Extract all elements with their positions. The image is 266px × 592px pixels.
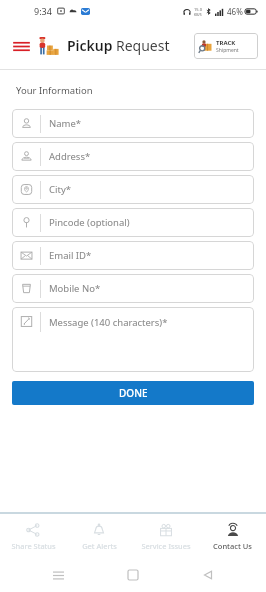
button[interactable]: Home (116, 558, 150, 592)
staticText: Message (140 characters)* (49, 316, 168, 329)
staticText: Address* (49, 150, 91, 163)
staticText: Email ID* (49, 249, 92, 262)
staticText: DONE (119, 386, 148, 400)
other: Pickup courier (37, 34, 61, 58)
button[interactable]: Name* (12, 109, 254, 138)
staticText: 15.0 (194, 7, 202, 12)
staticText: 46% (227, 6, 243, 17)
staticText: Your Information (16, 84, 93, 97)
button[interactable]: Share Status (0, 514, 66, 558)
button[interactable]: Message (140 characters)* (12, 307, 254, 372)
staticText: Service Issues (141, 541, 191, 551)
staticText: Get Alerts (82, 541, 117, 551)
staticText: Shipment (216, 47, 239, 54)
button[interactable]: Address* (12, 142, 254, 171)
staticText: Name* (49, 117, 82, 130)
button[interactable]: Email ID* (12, 241, 254, 270)
staticText: Mobile No* (49, 282, 101, 295)
button[interactable]: Back (191, 558, 225, 592)
staticText: TRACK (216, 39, 236, 47)
button[interactable]: City* (12, 175, 254, 204)
button[interactable]: TRACK (194, 33, 258, 59)
staticText: KB/S (194, 12, 202, 17)
button[interactable]: Contact Us (199, 514, 266, 558)
staticText: Share Status (11, 541, 56, 551)
staticText: Request (116, 36, 170, 55)
button[interactable]: Recent apps (41, 558, 75, 592)
staticText: City* (49, 183, 71, 196)
button[interactable]: Pincode (optional) (12, 208, 254, 237)
staticText: Pincode (optional) (49, 216, 130, 229)
staticText: Contact Us (213, 541, 252, 551)
staticText: Pickup (67, 36, 113, 55)
button[interactable]: Mobile No* (12, 274, 254, 303)
button[interactable]: DONE (12, 381, 254, 405)
staticText: 9:34 (34, 5, 52, 17)
button[interactable]: Service Issues (132, 514, 199, 558)
button[interactable]: Open navigation menu (10, 35, 32, 57)
button[interactable]: Get Alerts (66, 514, 132, 558)
